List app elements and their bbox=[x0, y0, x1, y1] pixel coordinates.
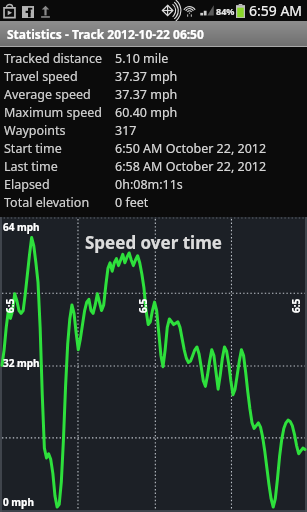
staticText: 64 mph bbox=[3, 220, 40, 234]
staticText: Elapsed bbox=[4, 176, 50, 193]
staticText: 6:54 AM bbox=[136, 297, 150, 313]
staticText: 37.37 mph bbox=[115, 68, 178, 85]
staticText: 6:58 AM October 22, 2012 bbox=[115, 158, 267, 175]
staticText: 60.40 mph bbox=[115, 104, 178, 121]
staticText: Tracked distance bbox=[4, 50, 103, 67]
button[interactable]: Maximum speed bbox=[0, 103, 307, 121]
staticText: 0h:08m:11s bbox=[115, 176, 183, 193]
staticText: Waypoints bbox=[4, 122, 66, 139]
staticText: 6:59 AM bbox=[249, 1, 303, 20]
staticText: 5.10 mile bbox=[115, 50, 169, 67]
staticText: 6:50 AM October 22, 2012 bbox=[115, 140, 267, 157]
button[interactable]: Travel speed bbox=[0, 67, 307, 85]
staticText: 317 bbox=[115, 122, 137, 139]
staticText: 0 feet bbox=[115, 194, 149, 211]
button[interactable]: Speed over time chart bbox=[0, 217, 307, 512]
button[interactable]: Tracked distance bbox=[0, 49, 307, 67]
button[interactable]: Elapsed bbox=[0, 175, 307, 193]
button[interactable]: Last time bbox=[0, 157, 307, 175]
staticText: 84% bbox=[216, 5, 235, 17]
staticText: 37.37 mph bbox=[115, 86, 178, 103]
button[interactable]: Start time bbox=[0, 139, 307, 157]
staticText: Start time bbox=[4, 140, 62, 157]
staticText: Average speed bbox=[4, 86, 91, 103]
staticText: Travel speed bbox=[4, 68, 78, 85]
staticText: Statistics - Track 2012-10-22 06:50 bbox=[7, 26, 204, 42]
staticText: 32 mph bbox=[3, 356, 40, 370]
staticText: 0 mph bbox=[3, 495, 34, 509]
staticText: Speed over time bbox=[85, 231, 222, 254]
button[interactable]: Waypoints bbox=[0, 121, 307, 139]
button[interactable]: Total elevation bbox=[0, 193, 307, 211]
staticText: 6:58 AM bbox=[289, 297, 303, 313]
staticText: Total elevation bbox=[4, 194, 90, 211]
button[interactable]: Average speed bbox=[0, 85, 307, 103]
button[interactable]: Statistics - Track 2012-10-22 06:50 bbox=[0, 21, 307, 47]
staticText: Last time bbox=[4, 158, 58, 175]
staticText: Maximum speed bbox=[4, 104, 103, 121]
staticText: 6:50 AM bbox=[3, 297, 17, 313]
